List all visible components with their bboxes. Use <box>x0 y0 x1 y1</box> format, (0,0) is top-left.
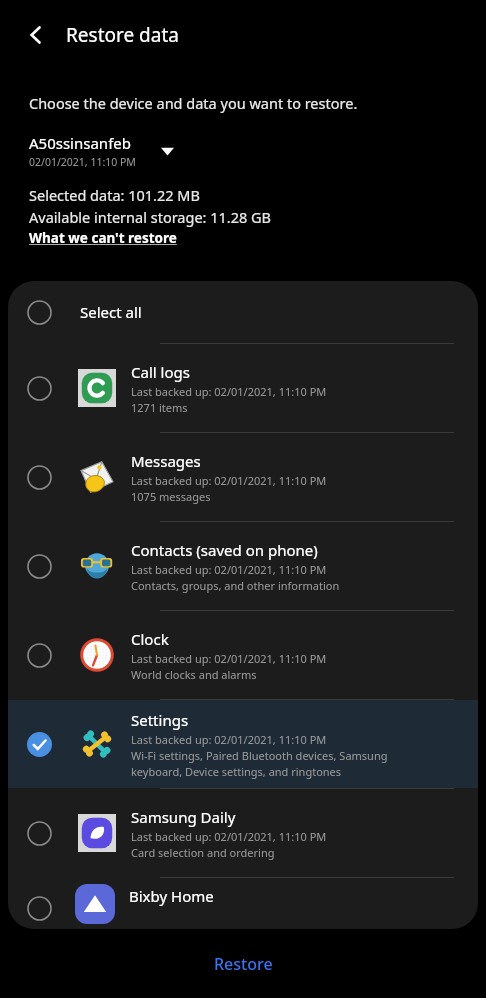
staticText: A50ssinsanfeb <box>29 133 131 153</box>
staticText: Available internal storage: 11.28 GB <box>29 207 272 227</box>
staticText: Last backed up: 02/01/2021, 11:10 PM <box>131 732 327 747</box>
staticText: keyboard, Device settings, and ringtones <box>131 764 342 779</box>
staticText: 1271 items <box>131 400 188 415</box>
button[interactable]: Settings <box>8 700 478 788</box>
staticText: Selected data: 101.22 MB <box>29 185 200 205</box>
staticText: 1075 messages <box>131 489 211 504</box>
staticText: Last backed up: 02/01/2021, 11:10 PM <box>131 562 327 577</box>
staticText: Last backed up: 02/01/2021, 11:10 PM <box>131 651 327 666</box>
button[interactable]: Select device <box>152 136 182 166</box>
staticText: Contacts (saved on phone) <box>131 540 318 560</box>
button[interactable]: Back <box>14 13 58 57</box>
staticText: Call logs <box>131 362 190 382</box>
button[interactable]: Samsung Daily <box>8 789 478 877</box>
staticText: Restore data <box>66 22 179 48</box>
button[interactable]: Bixby Home <box>8 878 478 929</box>
staticText: Clock <box>131 629 169 649</box>
button[interactable]: Call logs <box>8 344 478 432</box>
staticText: Messages <box>131 451 201 471</box>
staticText: Contacts, groups, and other information <box>131 578 340 593</box>
staticText: Samsung Daily <box>131 807 236 827</box>
staticText: Last backed up: 02/01/2021, 11:10 PM <box>131 384 327 399</box>
staticText: Settings <box>131 710 189 730</box>
staticText: Card selection and ordering <box>131 845 275 860</box>
staticText: World clocks and alarms <box>131 667 257 682</box>
staticText: Select all <box>80 302 142 322</box>
staticText: Last backed up: 02/01/2021, 11:10 PM <box>131 829 327 844</box>
button[interactable]: Clock <box>8 611 478 699</box>
button[interactable]: Select all <box>8 281 478 343</box>
staticText: 02/01/2021, 11:10 PM <box>29 155 136 169</box>
button[interactable]: Contacts (saved on phone) <box>8 522 478 610</box>
button[interactable]: What we can't restore <box>29 229 177 247</box>
staticText: Bixby Home <box>129 886 214 906</box>
staticText: Restore <box>214 953 273 975</box>
button[interactable]: Restore <box>0 930 486 998</box>
staticText: What we can't restore <box>29 229 177 247</box>
staticText: Wi-Fi settings, Paired Bluetooth devices… <box>131 748 388 763</box>
staticText: Choose the device and data you want to r… <box>29 93 358 113</box>
button[interactable]: Messages <box>8 433 478 521</box>
staticText: Last backed up: 02/01/2021, 11:10 PM <box>131 473 327 488</box>
